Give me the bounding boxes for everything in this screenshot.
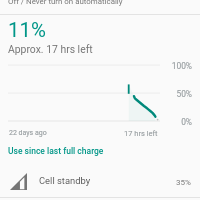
button[interactable]: Use since last full charge <box>0 143 200 158</box>
staticText: 50% <box>152 89 192 99</box>
staticText: 11% <box>8 18 46 42</box>
button[interactable]: Cell standby <box>0 166 200 195</box>
staticText: Off / Never turn on automatically <box>8 0 123 6</box>
staticText: 17 hrs left <box>124 129 158 138</box>
staticText: Cell standby <box>39 175 91 186</box>
staticText: 100% <box>152 61 192 71</box>
staticText: Approx. 17 hrs left <box>8 43 93 55</box>
staticText: 0% <box>152 117 192 127</box>
staticText: Use since last full charge <box>8 146 104 156</box>
other: Cell standby <box>10 173 27 190</box>
staticText: 35% <box>176 178 191 187</box>
staticText: 22 days ago <box>9 129 47 137</box>
